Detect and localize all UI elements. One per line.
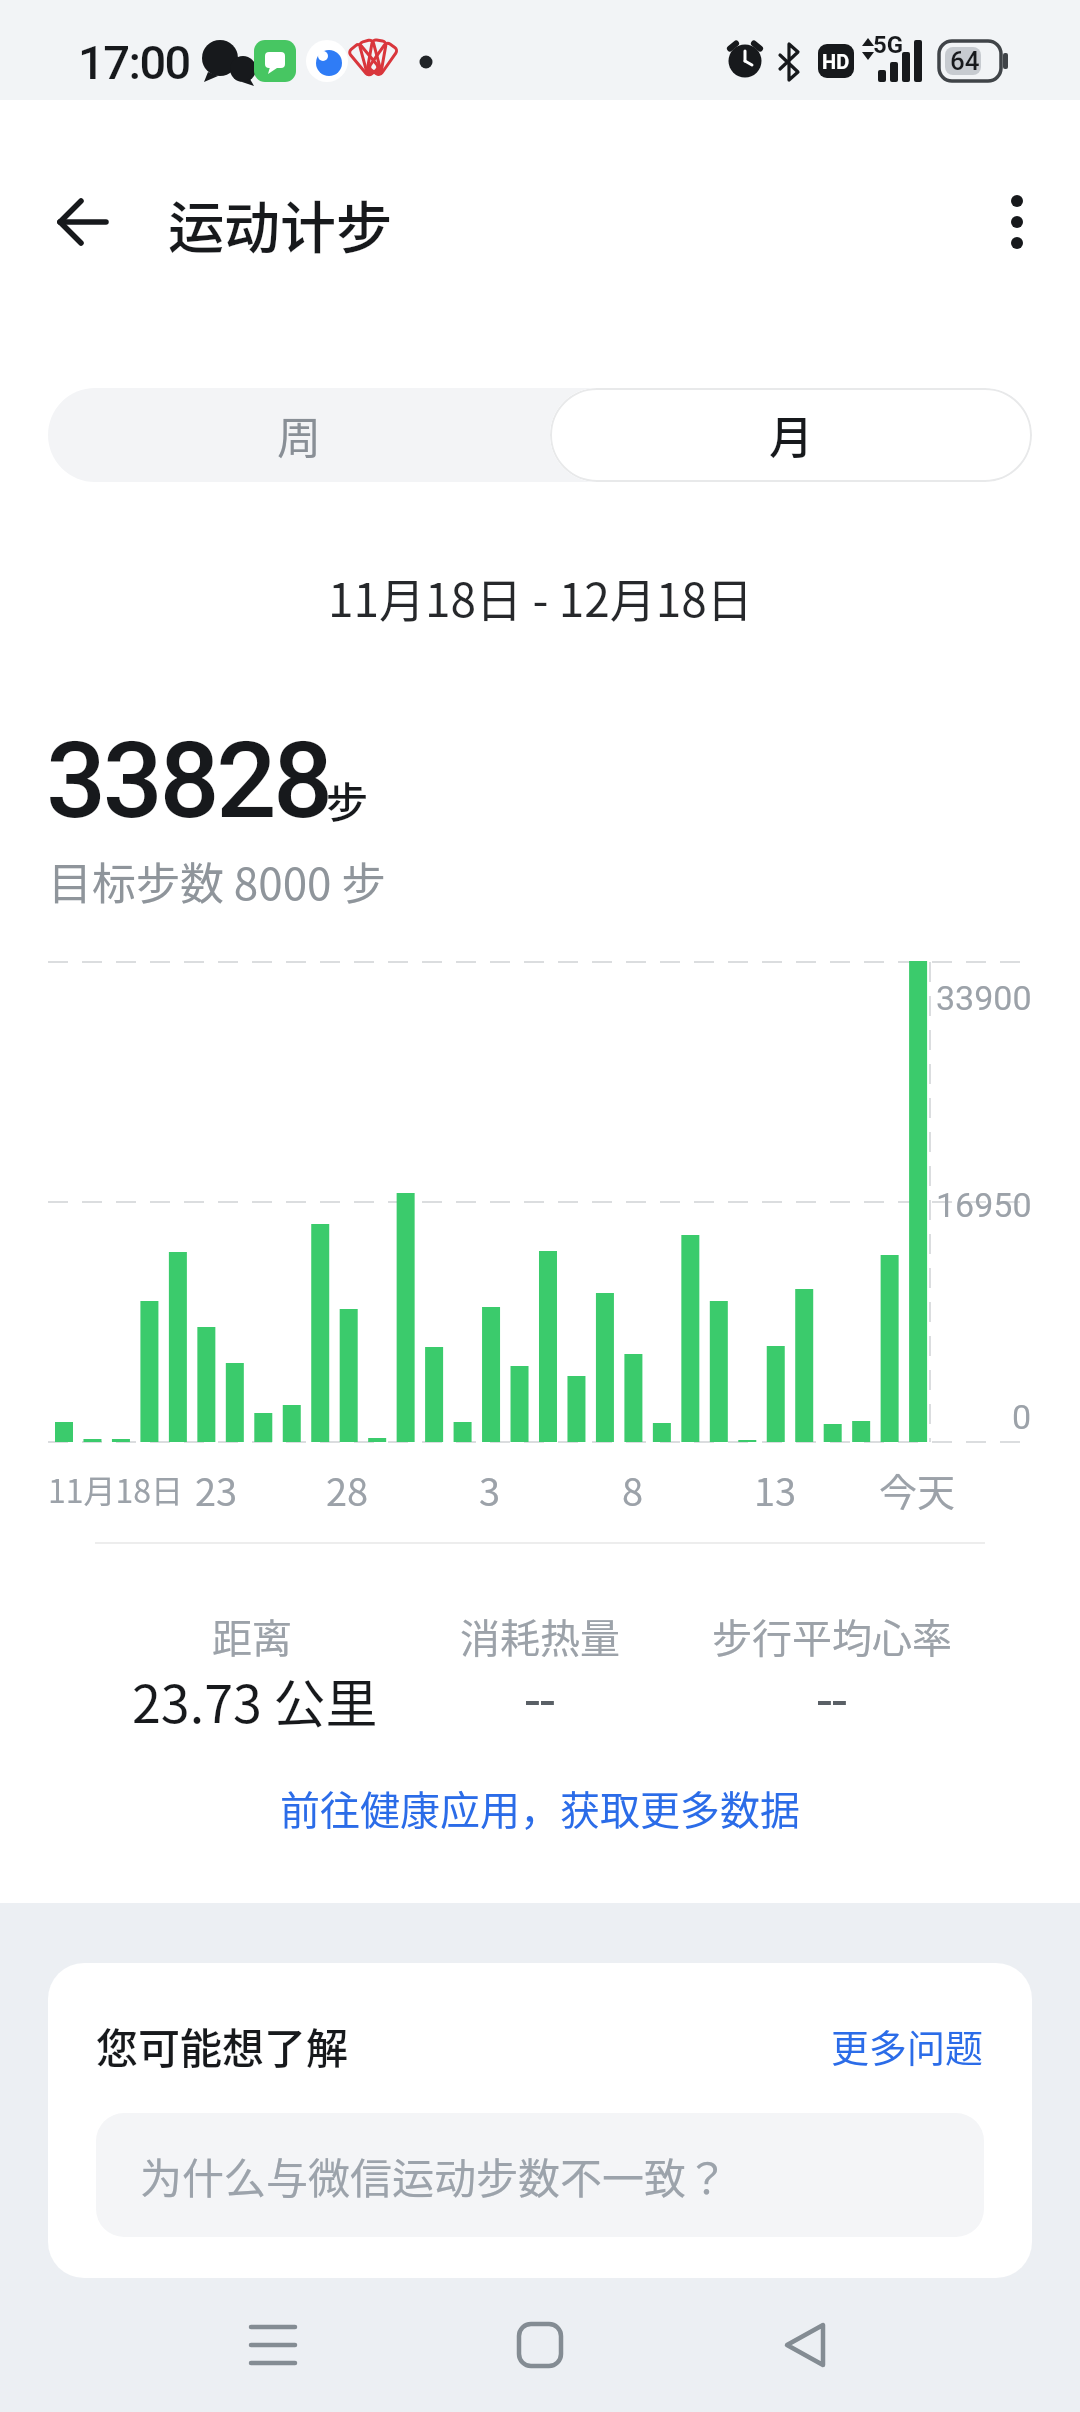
staticText: 23	[195, 1462, 238, 1517]
staticText: 步行平均心率	[712, 1607, 952, 1665]
staticText: 33828	[46, 719, 330, 843]
button[interactable]: 周	[48, 388, 550, 482]
staticText: 运动计步	[168, 183, 392, 264]
staticText: 距离	[212, 1607, 292, 1665]
staticText: 33900	[936, 978, 1032, 1018]
staticText: 17:00	[78, 35, 190, 90]
staticText: 16950	[936, 1185, 1032, 1225]
staticText: 您可能想了解	[96, 2015, 349, 2076]
button[interactable]: 为什么与微信运动步数不一致？	[96, 2113, 984, 2237]
button[interactable]: 更多问题	[584, 2010, 984, 2080]
staticText: 11月18日 - 12月18日	[328, 564, 753, 631]
staticText: 前往健康应用，获取更多数据	[280, 1779, 800, 1837]
staticText: 0	[1012, 1397, 1032, 1437]
staticText: 为什么与微信运动步数不一致？	[140, 2145, 729, 2206]
button[interactable]	[470, 2300, 610, 2390]
staticText: 28	[326, 1462, 369, 1517]
button[interactable]	[48, 190, 112, 254]
staticText: 5G	[873, 31, 904, 59]
staticText: 目标步数 8000 步	[48, 849, 386, 913]
staticText: 8	[622, 1462, 644, 1517]
button[interactable]: 前往健康应用，获取更多数据	[190, 1773, 890, 1843]
button[interactable]	[203, 2300, 343, 2390]
button[interactable]	[735, 2300, 875, 2390]
staticText: 13	[754, 1462, 797, 1517]
staticText: 今天	[879, 1462, 956, 1517]
staticText: 23.73 公里	[132, 1663, 378, 1738]
button[interactable]: 月	[550, 388, 1032, 482]
staticText: --	[817, 1669, 847, 1732]
staticText: 更多问题	[831, 2018, 984, 2073]
staticText: HD	[822, 50, 850, 73]
staticText: 步	[326, 769, 369, 830]
staticText: 3	[479, 1462, 501, 1517]
staticText: 月	[769, 403, 813, 467]
staticText: 周	[277, 403, 321, 467]
button[interactable]	[985, 190, 1049, 254]
staticText: 消耗热量	[460, 1607, 620, 1665]
staticText: 11月18日	[48, 1466, 184, 1512]
staticText: 64	[950, 46, 980, 76]
staticText: --	[525, 1669, 555, 1732]
